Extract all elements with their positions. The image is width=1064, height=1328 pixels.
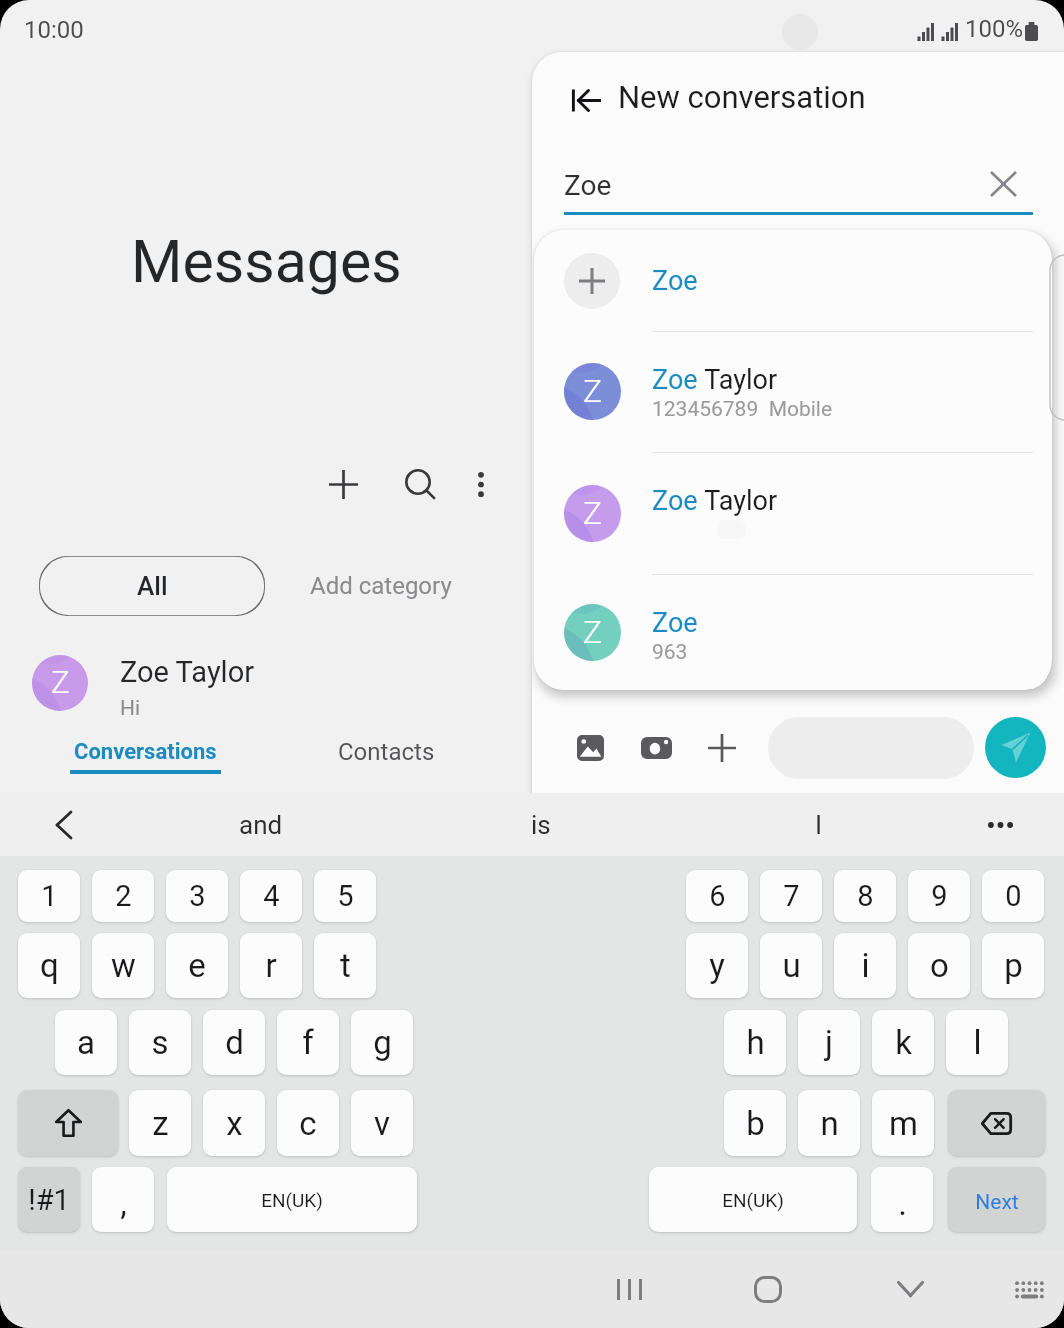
button[interactable]: Enter message	[768, 717, 974, 779]
button[interactable]: z	[129, 1090, 191, 1156]
staticText: 3	[189, 879, 206, 913]
button[interactable]: 1	[18, 870, 80, 922]
button[interactable]: h	[724, 1010, 786, 1075]
staticText: is	[531, 810, 551, 840]
staticText: ,	[120, 1184, 127, 1223]
button[interactable]: Home	[731, 1252, 805, 1326]
button[interactable]: Z	[534, 331, 1052, 452]
button[interactable]: k	[872, 1010, 934, 1075]
button[interactable]: Next	[948, 1167, 1045, 1232]
button[interactable]	[18, 1090, 118, 1156]
staticText: Messages	[131, 227, 402, 296]
button[interactable]: 7	[760, 870, 822, 922]
button[interactable]: Add attachment	[694, 720, 750, 776]
button[interactable]: f	[277, 1010, 339, 1075]
button[interactable]: 4	[240, 870, 302, 922]
staticText: 7	[783, 879, 800, 913]
staticText: p	[1004, 946, 1023, 985]
button[interactable]: !#1	[18, 1167, 80, 1232]
button[interactable]: Z	[534, 574, 1052, 690]
button[interactable]: i	[834, 933, 896, 998]
button[interactable]: j	[798, 1010, 860, 1075]
staticText: Z	[51, 664, 70, 701]
button[interactable]: .	[871, 1167, 933, 1232]
staticText: 9	[931, 879, 948, 913]
button[interactable]: e	[166, 933, 228, 998]
staticText: h	[746, 1023, 765, 1062]
button[interactable]: n	[798, 1090, 860, 1156]
button[interactable]: 8	[834, 870, 896, 922]
button[interactable]: I	[759, 793, 879, 856]
button[interactable]: Clear text	[977, 158, 1029, 210]
button[interactable]: Zoe	[534, 230, 1052, 331]
button[interactable]: c	[277, 1090, 339, 1156]
button[interactable]: o	[908, 933, 970, 998]
staticText: m	[889, 1104, 918, 1143]
button[interactable]: New conversation	[311, 452, 375, 516]
button[interactable]: 0	[982, 870, 1044, 922]
staticText: .	[898, 1184, 907, 1223]
button[interactable]: r	[240, 933, 302, 998]
staticText: 6	[709, 879, 726, 913]
button[interactable]: Contacts	[267, 728, 506, 790]
staticText: 4	[263, 879, 280, 913]
button[interactable]: u	[760, 933, 822, 998]
button[interactable]: g	[351, 1010, 413, 1075]
staticText: Add category	[310, 572, 452, 600]
staticText: q	[40, 946, 59, 985]
button[interactable]: a	[55, 1010, 117, 1075]
staticText: f	[302, 1023, 314, 1062]
staticText: Next	[975, 1190, 1019, 1215]
button[interactable]: Back	[558, 72, 614, 128]
button[interactable]: and	[201, 793, 321, 856]
button[interactable]: More options	[449, 452, 513, 516]
staticText: Taylor	[698, 485, 778, 517]
button[interactable]: 5	[314, 870, 376, 922]
button[interactable]: 3	[166, 870, 228, 922]
button[interactable]: w	[92, 933, 154, 998]
button[interactable]: Previous suggestions	[36, 797, 92, 853]
button[interactable]: Conversations	[26, 729, 264, 791]
button[interactable]: Recent apps	[592, 1252, 666, 1326]
button[interactable]: b	[724, 1090, 786, 1156]
button[interactable]: Choose input method	[992, 1252, 1064, 1326]
button[interactable]: ,	[92, 1167, 154, 1232]
staticText: EN(UK)	[261, 1189, 323, 1211]
button[interactable]	[948, 1090, 1045, 1156]
button[interactable]: Camera	[628, 720, 684, 776]
staticText: New conversation	[618, 79, 866, 115]
staticText: v	[374, 1104, 390, 1143]
staticText: Taylor	[698, 364, 778, 396]
button[interactable]: v	[351, 1090, 413, 1156]
button[interactable]: 2	[92, 870, 154, 922]
button[interactable]: Z	[534, 452, 1052, 574]
staticText: 100%	[965, 15, 1024, 43]
button[interactable]: Hide keyboard	[873, 1252, 947, 1326]
staticText: d	[225, 1023, 244, 1062]
button[interactable]: EN(UK)	[649, 1167, 857, 1232]
button[interactable]: s	[129, 1010, 191, 1075]
button[interactable]: Z	[0, 655, 400, 720]
button[interactable]: q	[18, 933, 80, 998]
button[interactable]: Add category	[295, 556, 467, 616]
staticText: s	[151, 1023, 169, 1062]
staticText: t	[340, 946, 351, 985]
button[interactable]: More suggestions	[972, 797, 1028, 853]
button[interactable]: m	[872, 1090, 934, 1156]
staticText: n	[820, 1104, 839, 1143]
button[interactable]: EN(UK)	[167, 1167, 417, 1232]
button[interactable]: Gallery	[562, 720, 618, 776]
button[interactable]: l	[946, 1010, 1008, 1075]
button[interactable]: p	[982, 933, 1044, 998]
button[interactable]: is	[481, 793, 601, 856]
button[interactable]: 9	[908, 870, 970, 922]
staticText: 123456789 Mobile	[652, 397, 833, 422]
button[interactable]: 6	[686, 870, 748, 922]
button[interactable]: x	[203, 1090, 265, 1156]
button[interactable]: d	[203, 1010, 265, 1075]
button[interactable]: y	[686, 933, 748, 998]
button[interactable]: All	[39, 556, 265, 616]
button[interactable]: Search	[389, 453, 453, 517]
button[interactable]: Send	[985, 717, 1046, 778]
button[interactable]: t	[314, 933, 376, 998]
